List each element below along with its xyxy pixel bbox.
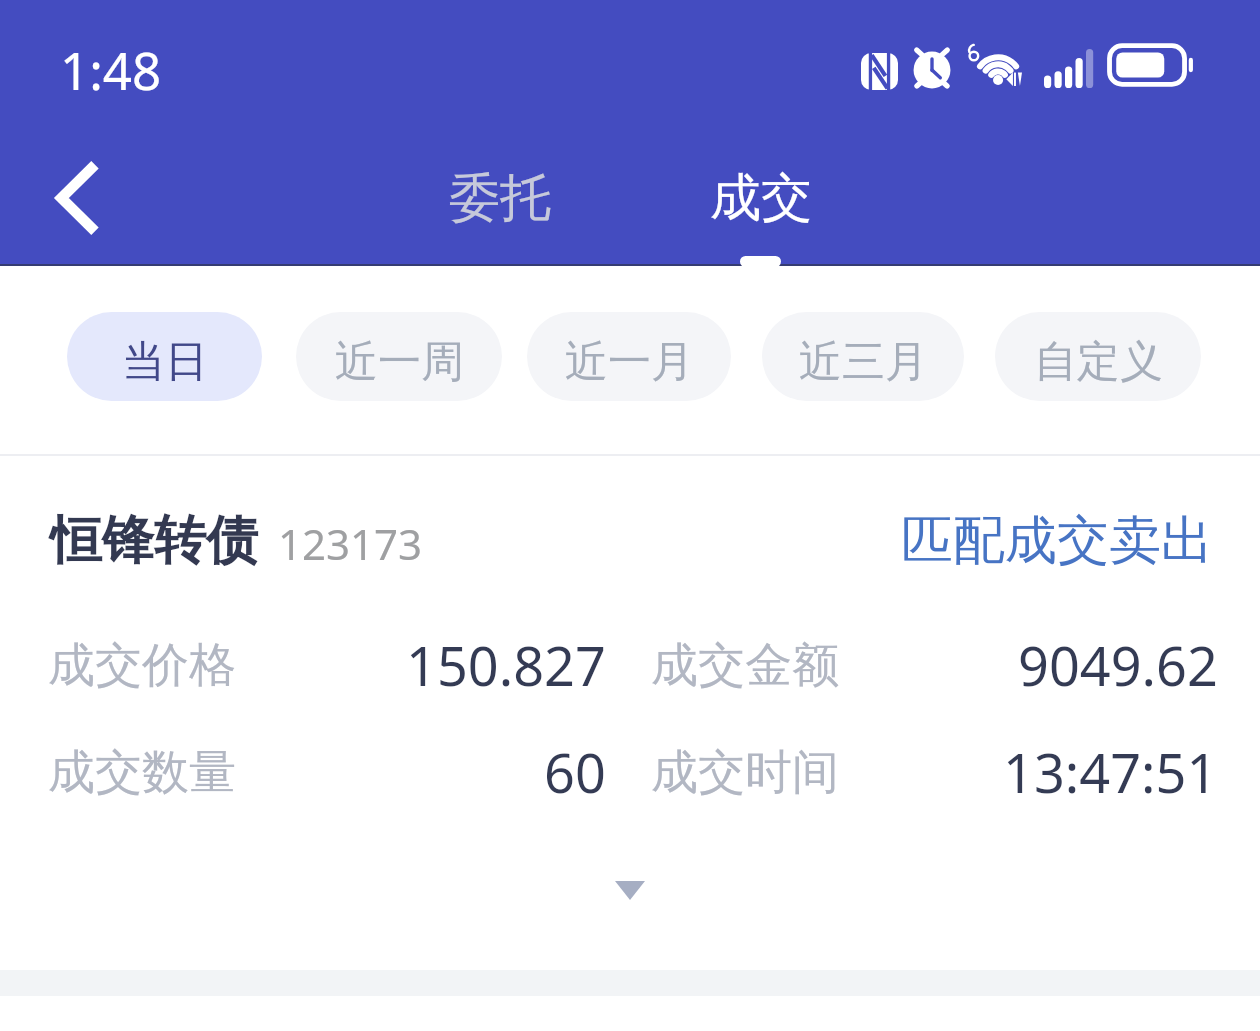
staticText: 123173 [278,515,423,572]
staticText: 自定义 [1034,335,1163,389]
button[interactable]: 恒锋转债 [0,456,1260,970]
staticText: 150.827 [406,628,606,702]
button[interactable]: 成交 [676,148,846,248]
staticText: 匹配成交卖出 [901,508,1213,574]
staticText: 近三月 [799,335,928,389]
staticText: 恒锋转债 [50,508,258,574]
staticText: 当日 [122,335,208,389]
staticText: 60 [544,735,606,809]
staticText: 成交价格 [48,636,236,695]
button[interactable]: 委托 [415,148,585,248]
button[interactable]: 自定义 [995,312,1201,401]
staticText: 9049.62 [1018,628,1218,702]
staticText: 成交时间 [651,743,839,802]
staticText: 成交数量 [48,743,236,802]
button[interactable]: Expand details [585,862,675,919]
staticText: 成交金额 [651,636,839,695]
staticText: 1:48 [60,35,162,104]
staticText: 13:47:51 [1003,735,1218,809]
button[interactable]: 近一月 [527,312,731,401]
button[interactable]: Back [25,145,121,251]
staticText: 委托 [449,166,551,230]
button[interactable]: 近三月 [762,312,964,401]
staticText: 近一月 [565,335,694,389]
staticText: 成交 [710,166,812,230]
button[interactable]: 当日 [67,312,262,401]
staticText: 近一周 [335,335,464,389]
button[interactable]: 近一周 [296,312,502,401]
